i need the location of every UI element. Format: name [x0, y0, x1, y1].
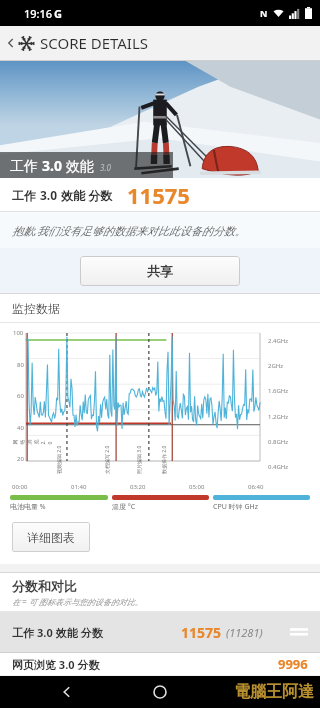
other: Back — [4, 36, 18, 50]
staticText: 工作 — [12, 625, 37, 640]
staticText: 19:16 — [24, 6, 53, 21]
staticText: 效能 分数 — [58, 187, 113, 203]
button[interactable]: Back — [0, 26, 320, 60]
button[interactable]: Back — [56, 681, 78, 703]
staticText: 在 = 可 图标表示与您的设备的对比。 — [12, 596, 143, 607]
button[interactable]: 工作 — [0, 612, 320, 652]
staticText: 100 — [13, 329, 24, 337]
staticText: SCORE DETAILS — [40, 33, 149, 53]
button[interactable]: 共享 — [80, 256, 240, 286]
staticText: 数据操作 2.0 — [161, 445, 168, 474]
staticText: 3.0 — [40, 187, 58, 203]
staticText: 電腦王阿達 — [234, 682, 314, 702]
staticText: 监控数据 — [12, 301, 60, 316]
staticText: 详细图表 — [27, 530, 75, 545]
staticText: 3.0 — [100, 162, 111, 173]
staticText: N — [260, 7, 268, 19]
staticText: 文档编写 2.0 — [104, 445, 111, 474]
staticText: 效能 分数 — [53, 625, 103, 640]
staticText: 11575 — [127, 180, 190, 210]
staticText: 网络浏览 2.0 — [11, 439, 53, 444]
staticText: 0.8GHz — [268, 438, 289, 446]
staticText: 0.4GHz — [268, 463, 289, 471]
staticText: 抱歉,我们没有足够的数据来对比此设备的分数。 — [12, 223, 246, 238]
staticText: 工作 — [12, 187, 40, 203]
staticText: 温度 °C — [112, 502, 136, 512]
staticText: 06:40 — [248, 483, 264, 491]
staticText: 05:00 — [189, 483, 205, 491]
staticText: 80 — [17, 361, 24, 369]
staticText: 03:20 — [130, 483, 146, 491]
button[interactable]: Home — [149, 681, 171, 703]
staticText: CPU 时钟 GHz — [213, 502, 258, 512]
staticText: 共享 — [147, 263, 173, 279]
staticText: 工作 — [10, 156, 42, 175]
staticText: 60 — [17, 392, 24, 400]
staticText: 1.2GHz — [268, 413, 289, 421]
staticText: 40 — [17, 424, 24, 432]
staticText: 9996 — [278, 655, 308, 673]
button[interactable]: 网页浏览 3.0 分数 — [0, 653, 320, 675]
staticText: 2GHz — [268, 362, 284, 370]
staticText: 1.6GHz — [268, 387, 289, 395]
staticText: 3.0 — [42, 156, 62, 175]
staticText: 效能 — [62, 156, 94, 175]
staticText: 2.4GHz — [268, 337, 289, 345]
staticText: 20 — [17, 455, 24, 463]
staticText: (11281) — [226, 625, 263, 640]
staticText: G — [54, 6, 62, 21]
staticText: 电池电量 % — [10, 502, 46, 512]
staticText: 网页浏览 3.0 分数 — [12, 657, 100, 672]
staticText: 11575 — [181, 623, 222, 642]
staticText: 分数和对比 — [12, 578, 77, 594]
other: Equal to your device — [290, 626, 308, 638]
staticText: 01:40 — [71, 483, 87, 491]
button[interactable]: 详细图表 — [12, 522, 90, 552]
staticText: 视频编辑 2.0 — [56, 445, 63, 474]
staticText: 00:00 — [12, 483, 28, 491]
staticText: 照片编辑 3.0 — [136, 445, 143, 474]
staticText: 3.0 — [37, 625, 53, 640]
